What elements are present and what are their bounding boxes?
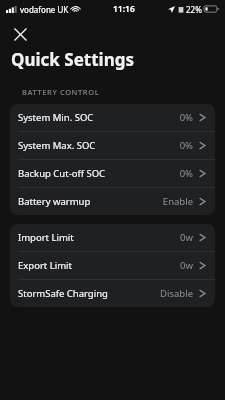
button[interactable]: Backup Cut-off SOC bbox=[10, 160, 215, 187]
staticText: Import Limit bbox=[18, 231, 74, 244]
button[interactable]: Close bbox=[7, 21, 33, 47]
staticText: Export Limit bbox=[18, 259, 72, 272]
staticText: 0% bbox=[179, 167, 193, 180]
staticText: System Max. SOC bbox=[18, 139, 96, 152]
staticText: Quick Settings bbox=[11, 48, 134, 71]
staticText: 0w bbox=[180, 259, 193, 272]
button[interactable]: Import Limit bbox=[10, 224, 215, 251]
staticText: 0w bbox=[180, 231, 193, 244]
staticText: 0% bbox=[179, 111, 193, 124]
staticText: BATTERY CONTROL bbox=[22, 87, 100, 97]
button[interactable]: System Max. SOC bbox=[10, 132, 215, 159]
staticText: StormSafe Charging bbox=[18, 287, 108, 300]
button[interactable]: Battery warmup bbox=[10, 188, 215, 215]
staticText: System Min. SOC bbox=[18, 111, 94, 124]
staticText: 22% bbox=[186, 4, 202, 15]
staticText: Backup Cut-off SOC bbox=[18, 167, 106, 180]
staticText: Battery warmup bbox=[18, 195, 91, 208]
button[interactable]: System Min. SOC bbox=[10, 104, 215, 131]
button[interactable]: Export Limit bbox=[10, 252, 215, 279]
staticText: Enable bbox=[162, 195, 193, 208]
button[interactable]: StormSafe Charging bbox=[10, 280, 215, 307]
staticText: vodafone UK bbox=[20, 4, 69, 15]
staticText: 11:16 bbox=[113, 3, 135, 15]
staticText: Disable bbox=[160, 287, 193, 300]
staticText: 0% bbox=[179, 139, 193, 152]
